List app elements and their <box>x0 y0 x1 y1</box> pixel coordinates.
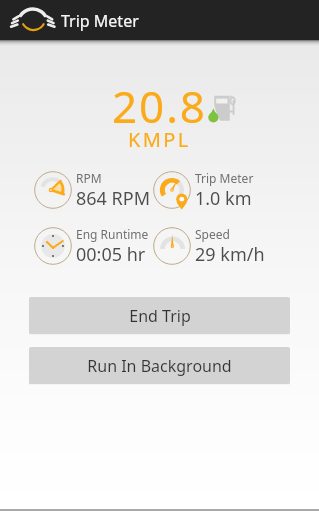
staticText: RPM <box>76 170 102 186</box>
staticText: 29 km/h <box>195 242 265 264</box>
button[interactable]: Eng Runtime <box>34 227 151 265</box>
staticText: 00:05 hr <box>76 242 146 264</box>
staticText: 864 RPM <box>76 186 150 208</box>
button[interactable]: Trip Meter home <box>0 0 64 40</box>
button[interactable]: Trip Meter <box>153 171 270 209</box>
button[interactable]: RPM <box>34 171 151 209</box>
button[interactable]: End Trip <box>29 297 290 334</box>
staticText: Speed <box>195 226 230 242</box>
staticText: Trip Meter <box>61 10 139 32</box>
staticText: 20.8 <box>112 76 207 136</box>
staticText: 1.0 km <box>195 186 252 208</box>
button[interactable]: Run In Background <box>29 347 290 384</box>
staticText: End Trip <box>129 305 191 327</box>
staticText: Eng Runtime <box>76 226 149 242</box>
staticText: Run In Background <box>87 355 232 377</box>
staticText: KMPL <box>128 126 191 153</box>
button[interactable]: Speed <box>153 227 270 265</box>
staticText: Trip Meter <box>195 170 254 186</box>
